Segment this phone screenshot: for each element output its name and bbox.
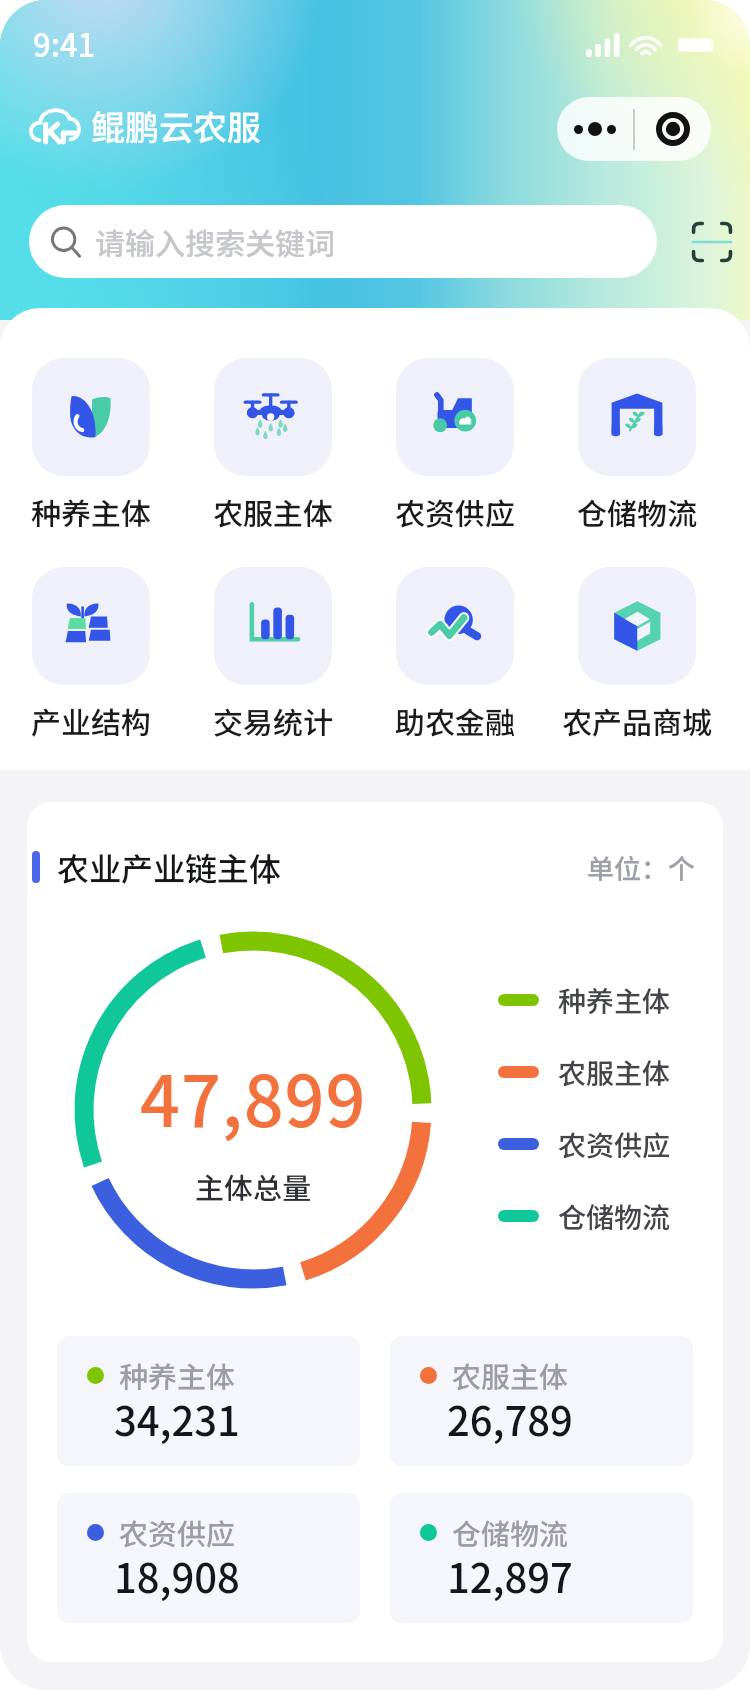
staticText: 18,908 <box>114 1547 240 1605</box>
button[interactable]: 农服主体 <box>390 1336 693 1466</box>
button[interactable]: 农资供应 <box>57 1493 360 1623</box>
button[interactable]: More options <box>557 97 633 161</box>
staticText: 9:41 <box>33 21 96 66</box>
staticText: 主体总量 <box>195 1165 312 1207</box>
staticText: 26,789 <box>447 1390 573 1448</box>
staticText: 农业产业链主体 <box>57 844 282 890</box>
button[interactable]: 农资供应 <box>364 358 546 533</box>
staticText: 种养主体 <box>31 490 151 533</box>
staticText: 种养主体 <box>558 980 671 1021</box>
button[interactable]: 农产品商城 <box>546 567 728 742</box>
staticText: 单位：个 <box>587 848 695 887</box>
staticText: 农资供应 <box>558 1124 671 1165</box>
button[interactable]: 请输入搜索关键词 <box>29 205 657 278</box>
button[interactable]: 助农金融 <box>364 567 546 742</box>
button[interactable]: 种养主体 <box>0 358 182 533</box>
button[interactable]: 农服主体 <box>182 358 364 533</box>
staticText: 请输入搜索关键词 <box>95 220 335 263</box>
staticText: 产业结构 <box>31 699 151 742</box>
button[interactable]: 种养主体 <box>498 978 671 1022</box>
staticText: 47,899 <box>140 1046 367 1147</box>
button[interactable]: Close mini program <box>635 97 711 161</box>
staticText: 交易统计 <box>213 699 333 742</box>
button[interactable]: Scan QR code <box>681 211 743 273</box>
staticText: 农服主体 <box>452 1354 569 1396</box>
button[interactable]: 农资供应 <box>498 1122 671 1166</box>
staticText: 仓储物流 <box>577 490 697 533</box>
button[interactable]: 产业结构 <box>0 567 182 742</box>
staticText: 农资供应 <box>119 1511 236 1553</box>
button[interactable]: 交易统计 <box>182 567 364 742</box>
staticText: 农资供应 <box>395 490 515 533</box>
staticText: 农产品商城 <box>562 699 712 742</box>
staticText: 农服主体 <box>558 1052 671 1093</box>
staticText: 助农金融 <box>395 699 515 742</box>
staticText: 34,231 <box>114 1390 240 1448</box>
staticText: 仓储物流 <box>452 1511 569 1553</box>
staticText: 12,897 <box>447 1547 573 1605</box>
staticText: 农服主体 <box>213 490 333 533</box>
button[interactable]: 农服主体 <box>498 1050 671 1094</box>
staticText: 仓储物流 <box>558 1196 671 1237</box>
staticText: 种养主体 <box>119 1354 236 1396</box>
button[interactable]: 仓储物流 <box>390 1493 693 1623</box>
button[interactable]: 仓储物流 <box>546 358 728 533</box>
staticText: 鲲鹏云农服 <box>91 101 261 150</box>
button[interactable]: 仓储物流 <box>498 1194 671 1238</box>
button[interactable]: 种养主体 <box>57 1336 360 1466</box>
